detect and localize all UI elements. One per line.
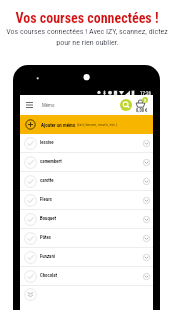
staticText: (lait, beurre, oeufs, etc.) bbox=[77, 122, 118, 127]
button[interactable]: camembert bbox=[20, 153, 153, 172]
staticText: Funzani bbox=[40, 254, 55, 260]
button[interactable]: lessive bbox=[20, 134, 153, 153]
staticText: 2 bbox=[144, 98, 147, 103]
button[interactable]: Chocolat bbox=[20, 267, 153, 286]
staticText: camembert bbox=[40, 159, 62, 165]
button[interactable]: Search bbox=[120, 99, 132, 111]
button[interactable]: Show more items bbox=[24, 288, 37, 301]
button[interactable]: Bouquet bbox=[20, 210, 153, 229]
staticText: Chocolat bbox=[40, 273, 58, 279]
staticText: Fleurs bbox=[40, 197, 52, 203]
staticText: carotte bbox=[40, 178, 54, 184]
button[interactable]: Ajouter un mémo bbox=[20, 115, 153, 134]
button[interactable]: Open navigation menu bbox=[22, 95, 37, 115]
staticText: Pâtes bbox=[40, 235, 51, 241]
staticText: lessive bbox=[40, 140, 54, 146]
staticText: 0,00 € bbox=[136, 108, 148, 113]
staticText: Bouquet bbox=[40, 216, 56, 222]
staticText: Vos courses connectées ! bbox=[15, 10, 159, 26]
button[interactable]: Pâtes bbox=[20, 229, 153, 248]
staticText: Ajouter un mémo bbox=[41, 122, 77, 128]
staticText: Vos courses connectées ! Avec IZY, scann… bbox=[6, 27, 168, 36]
button[interactable]: Fleurs bbox=[20, 191, 153, 210]
staticText: 17:26 bbox=[140, 90, 152, 96]
staticText: Mémo bbox=[42, 102, 55, 108]
button[interactable]: carotte bbox=[20, 172, 153, 191]
button[interactable]: Funzani bbox=[20, 248, 153, 267]
staticText: pour ne rien oublier. bbox=[56, 38, 119, 47]
button[interactable]: Shopping cart, 0,00 euro bbox=[135, 95, 150, 115]
